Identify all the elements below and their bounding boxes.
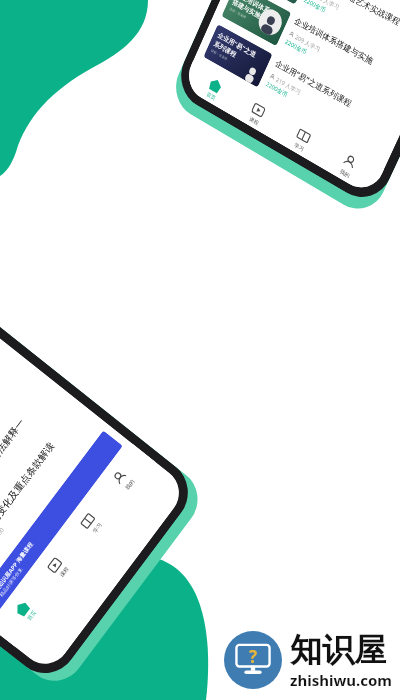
staticText: 企业用“易”之道 bbox=[216, 30, 258, 60]
staticText: 管理者的沟通艺术实战课程 bbox=[311, 0, 400, 28]
staticText: 《民法典》下建设工程司法解释一 bbox=[0, 416, 27, 543]
staticText: 课程 bbox=[248, 116, 260, 127]
staticText: 219 人学习 bbox=[275, 76, 302, 96]
button[interactable]: 我的 bbox=[326, 146, 369, 187]
button[interactable]: 我的 bbox=[103, 458, 144, 503]
staticText: 讲师：张老师 bbox=[210, 49, 228, 61]
button[interactable]: 扫码下载知识屋APP 海量课程 bbox=[0, 430, 123, 619]
staticText: ? bbox=[249, 645, 258, 668]
staticText: 免费学 精品好课等你来 bbox=[0, 566, 24, 612]
staticText: 搭建与实施 bbox=[231, 0, 262, 20]
other: 知识屋 logo bbox=[224, 631, 282, 689]
staticText: 课程 bbox=[59, 566, 70, 579]
staticText: 知识屋 bbox=[290, 630, 386, 670]
staticText: 209 人学习 bbox=[294, 33, 322, 54]
staticText: 企业用“易”之道系列课程 bbox=[273, 57, 354, 110]
button[interactable]: 回放 bbox=[0, 382, 68, 576]
button[interactable]: 预告 bbox=[0, 358, 38, 553]
staticText: 扫码下载知识屋APP 海量课程 bbox=[0, 540, 35, 608]
staticText: 企业培训体系搭建与实施 bbox=[293, 16, 375, 67]
button[interactable]: 直播中 bbox=[0, 335, 8, 529]
button[interactable]: 学习 bbox=[281, 120, 323, 160]
button[interactable]: 企业用“易”之道 bbox=[203, 24, 396, 157]
staticText: 企业培训体系 bbox=[234, 0, 271, 15]
staticText: 首页 bbox=[26, 609, 38, 622]
staticText: 03月20日 14:00 bbox=[0, 526, 6, 565]
staticText: 2200金币 bbox=[303, 0, 327, 14]
staticText: 我的 bbox=[124, 478, 136, 491]
staticText: zhishiwu.com bbox=[290, 670, 392, 690]
staticText: 学习 bbox=[92, 522, 104, 534]
staticText: 2200金币 bbox=[284, 38, 308, 56]
button[interactable]: 企业培训体系 bbox=[221, 0, 400, 114]
staticText: 0人学习 bbox=[0, 549, 1, 571]
button[interactable]: 课程 bbox=[236, 95, 277, 133]
staticText: 学习 bbox=[293, 142, 305, 153]
button[interactable]: 回放 bbox=[0, 406, 97, 599]
button[interactable]: 首页 bbox=[5, 589, 46, 634]
staticText: 讲师：张老师 bbox=[229, 7, 247, 19]
button[interactable]: 学习 bbox=[71, 501, 112, 546]
staticText: 2200金币 bbox=[265, 80, 289, 99]
staticText: 首页 bbox=[205, 91, 216, 102]
button[interactable]: 管理者的沟通艺术 bbox=[240, 0, 400, 71]
button[interactable]: 课程 bbox=[38, 545, 79, 590]
staticText: 我的 bbox=[339, 168, 351, 180]
button[interactable]: 首页 bbox=[194, 71, 234, 108]
staticText: 司法解释一的变化及重点条款解读 bbox=[0, 440, 57, 566]
staticText: 系列课程 bbox=[212, 39, 238, 59]
staticText: 318 人学习 bbox=[313, 0, 341, 12]
